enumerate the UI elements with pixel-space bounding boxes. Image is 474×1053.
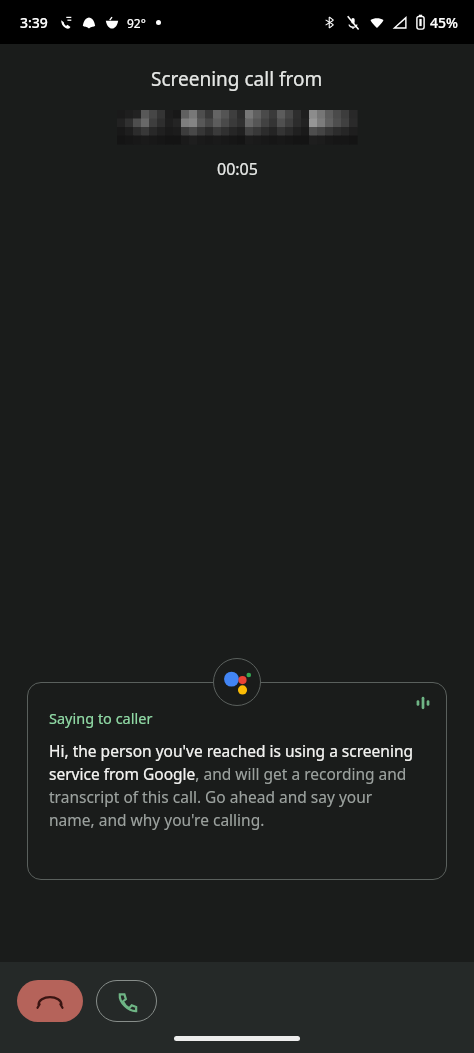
staticText: Screening call from xyxy=(151,66,323,92)
button[interactable]: Saying to caller xyxy=(27,682,447,880)
staticText: 45% xyxy=(430,13,458,32)
staticText: 3:39 xyxy=(20,13,48,32)
button[interactable]: Answer call xyxy=(96,980,157,1022)
staticText: 00:05 xyxy=(217,158,258,180)
button[interactable]: Google Assistant xyxy=(213,658,261,706)
staticText: Hi, the person you've reached is using a… xyxy=(49,740,421,831)
button[interactable]: End call xyxy=(17,980,83,1022)
staticText: 92° xyxy=(127,15,146,31)
staticText: Saying to caller xyxy=(49,708,153,728)
